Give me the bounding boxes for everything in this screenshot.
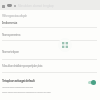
- button[interactable]: Keypad: [58, 38, 72, 52]
- button[interactable]: Search: [6, 3, 12, 8]
- staticText: Nomor telepon: [2, 50, 19, 54]
- staticText: Pilih negara atau wilayah: [2, 14, 27, 18]
- staticText: Masukkan detail lainnya seperti jalan, k…: [2, 64, 43, 68]
- staticText: pada setiap pemesanan berikutnya di toko…: [2, 90, 51, 93]
- staticText: Indonesia: [2, 20, 17, 25]
- staticText: Alamat ini akan digunakan otomatis: [2, 85, 33, 88]
- staticText: Masukkan alamat lengkap: [18, 4, 54, 8]
- button[interactable]: Back: [1, 4, 5, 8]
- button[interactable]: Set as default: [86, 79, 97, 86]
- staticText: Nama penerima: [2, 33, 21, 37]
- staticText: Tetapkan sebagai default: [2, 78, 35, 82]
- button[interactable]: More options: [13, 4, 17, 7]
